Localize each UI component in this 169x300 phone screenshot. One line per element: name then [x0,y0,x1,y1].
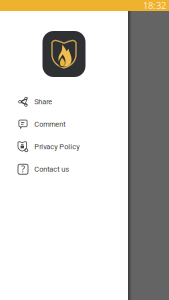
staticText: Privacy Policy [34,142,79,151]
staticText: Share [34,97,52,106]
button[interactable]: Comment [0,113,128,135]
staticText: Comment [34,120,65,129]
staticText: 18:32 [143,0,166,12]
staticText: ? [21,163,25,175]
button[interactable]: Share [0,90,128,113]
button[interactable]: ? [0,158,128,180]
staticText: Contact us [34,165,69,174]
button[interactable]: Privacy Policy [0,135,128,158]
